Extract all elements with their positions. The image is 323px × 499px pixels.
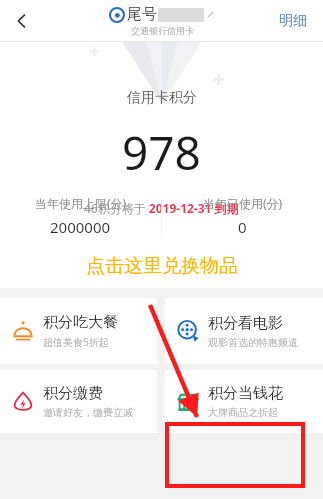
- button[interactable]: 当年使用上限(分): [0, 195, 161, 237]
- staticText: 2000000: [50, 217, 111, 237]
- staticText: 明细: [279, 12, 307, 30]
- staticText: 当年使用上限(分): [35, 195, 127, 211]
- staticText: 邀请好友，缴费立减: [43, 406, 133, 419]
- button[interactable]: 当年已使用(分): [162, 195, 323, 237]
- staticText: 观影首选的特惠频道: [208, 336, 298, 349]
- staticText: 积分吃大餐: [43, 313, 118, 332]
- staticText: 交通银行信用卡: [131, 25, 194, 36]
- staticText: 大牌商品之折起: [208, 406, 278, 419]
- staticText: 尾号: [127, 5, 157, 24]
- staticText: 积分缴费: [43, 384, 103, 403]
- staticText: 当年已使用(分): [203, 195, 283, 211]
- button[interactable]: 积分看电影: [165, 298, 323, 364]
- staticText: 点击这里兑换物品: [86, 254, 238, 278]
- staticText: 积分看电影: [208, 314, 283, 333]
- staticText: 信用卡积分: [127, 89, 197, 107]
- staticText: 978: [122, 121, 201, 184]
- staticText: 超值美食5折起: [43, 335, 109, 349]
- button[interactable]: 积分吃大餐: [0, 298, 157, 364]
- staticText: 46积分将于 2019-12-31 到期: [84, 200, 239, 216]
- button[interactable]: 明细: [273, 6, 313, 36]
- button[interactable]: 积分缴费: [0, 370, 157, 433]
- button[interactable]: 积分当钱花: [165, 370, 323, 433]
- button[interactable]: Back: [0, 0, 44, 41]
- staticText: 0: [238, 217, 247, 237]
- staticText: 积分当钱花: [208, 384, 283, 403]
